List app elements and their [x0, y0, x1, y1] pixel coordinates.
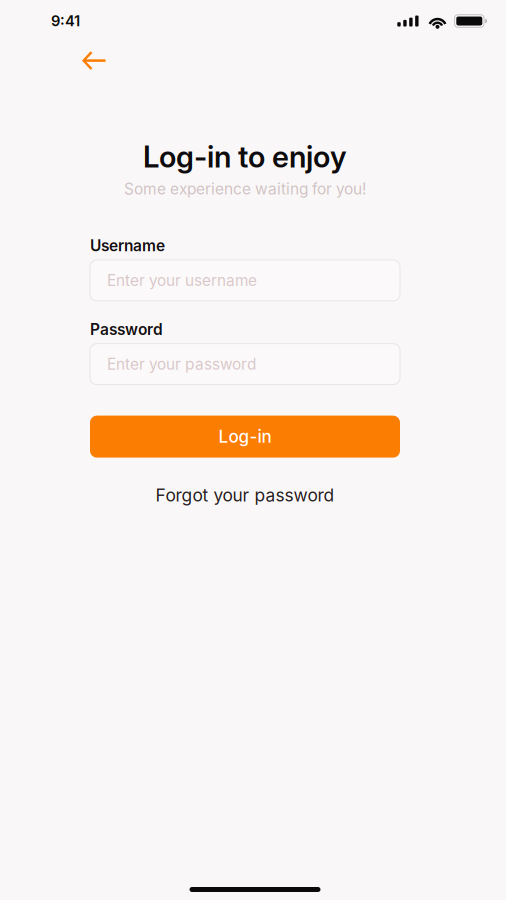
button[interactable]: Back — [71, 42, 117, 77]
staticText: Enter your password — [107, 355, 256, 373]
staticText: Enter your username — [107, 271, 257, 290]
staticText: Log-in — [218, 426, 271, 447]
staticText: Log-in to enjoy — [143, 139, 347, 174]
staticText: Forgot your password — [155, 485, 334, 506]
staticText: Some experience waiting for you! — [124, 179, 366, 198]
button[interactable]: Enter your username — [90, 260, 400, 301]
staticText: Password — [90, 320, 163, 339]
button[interactable]: Forgot your password — [139, 479, 350, 512]
staticText: 9:41 — [51, 12, 80, 30]
button[interactable]: Enter your password — [90, 344, 400, 385]
staticText: Username — [90, 236, 165, 255]
button[interactable]: Log-in — [90, 416, 400, 458]
